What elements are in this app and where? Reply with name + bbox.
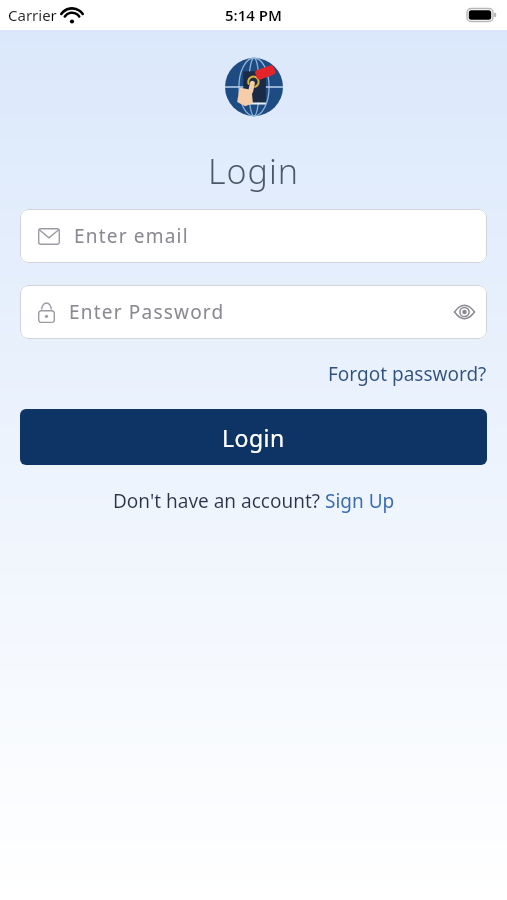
staticText: Enter Password <box>69 299 225 325</box>
button[interactable]: Login <box>20 409 487 465</box>
button[interactable]: Sign Up <box>325 488 395 514</box>
button[interactable]: Forgot password? <box>328 361 487 387</box>
button[interactable]: Enter Password <box>20 285 487 339</box>
button[interactable]: Enter email <box>20 209 487 263</box>
staticText: Enter email <box>74 223 189 249</box>
staticText: 5:14 PM <box>225 5 282 25</box>
button[interactable] <box>454 305 475 319</box>
staticText: Carrier <box>8 5 57 25</box>
staticText: Don't have an account? <box>113 488 325 514</box>
staticText: Login <box>222 422 285 453</box>
staticText: Login <box>208 148 300 194</box>
